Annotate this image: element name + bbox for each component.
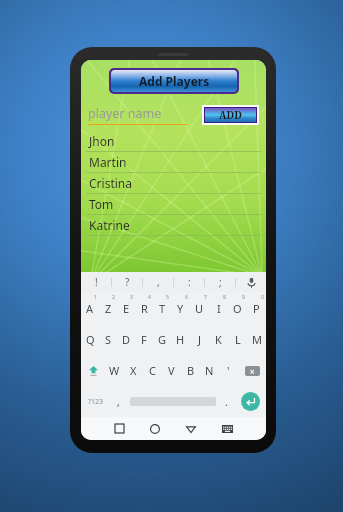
staticText: S	[105, 332, 112, 347]
button[interactable]: :	[174, 272, 204, 292]
button[interactable]: T	[153, 292, 171, 324]
staticText: I	[217, 301, 221, 316]
button[interactable]: P	[247, 292, 266, 324]
staticText: H	[176, 332, 185, 347]
button[interactable]: ADD	[205, 108, 256, 122]
button[interactable]: Martin	[81, 152, 266, 173]
button[interactable]: ?123	[81, 386, 110, 417]
button[interactable]: Katrine	[81, 215, 266, 236]
staticText: V	[168, 363, 175, 378]
staticText: ×	[250, 366, 255, 376]
staticText: '	[227, 363, 230, 378]
staticText: 7	[204, 294, 207, 301]
button[interactable]: Q	[81, 324, 99, 355]
button[interactable]: ?	[112, 272, 142, 292]
staticText: Y	[177, 301, 184, 316]
button[interactable]: R	[135, 292, 153, 324]
staticText: M	[252, 332, 262, 347]
button[interactable]: A	[81, 292, 99, 324]
button[interactable]: K	[209, 324, 228, 355]
button[interactable]: I	[209, 292, 228, 324]
button[interactable]: Cristina	[81, 173, 266, 194]
staticText: player name	[88, 105, 162, 122]
staticText: !	[95, 275, 98, 289]
button[interactable]: U	[190, 292, 209, 324]
button[interactable]: Recent apps	[101, 417, 137, 440]
staticText: Katrine	[89, 217, 130, 233]
staticText: ,	[157, 275, 160, 289]
button[interactable]: N	[200, 355, 219, 386]
button[interactable]: S	[99, 324, 117, 355]
button[interactable]: player name	[88, 105, 196, 125]
staticText: 5	[166, 294, 169, 301]
button[interactable]: Tom	[81, 194, 266, 215]
staticText: G	[158, 332, 167, 347]
button[interactable]: W	[105, 355, 124, 386]
button[interactable]: Home	[137, 417, 173, 440]
button[interactable]: ;	[205, 272, 235, 292]
staticText: 9	[242, 294, 245, 301]
button[interactable]: Backspace	[238, 355, 266, 386]
button[interactable]: ,	[143, 272, 173, 292]
staticText: 6	[185, 294, 188, 301]
staticText: Add Players	[139, 73, 210, 89]
staticText: L	[235, 332, 241, 347]
button[interactable]: Enter	[235, 386, 266, 417]
button[interactable]: Jhon	[81, 131, 266, 152]
staticText: 0	[261, 294, 264, 301]
button[interactable]: F	[135, 324, 153, 355]
staticText: K	[215, 332, 222, 347]
staticText: X	[130, 363, 137, 378]
staticText: 4	[148, 294, 151, 301]
staticText: Cristina	[89, 175, 132, 191]
staticText: R	[141, 301, 148, 316]
button[interactable]: ,	[110, 386, 127, 417]
staticText: Z	[105, 301, 112, 316]
staticText: :	[188, 275, 191, 289]
staticText: U	[195, 301, 204, 316]
staticText: 3	[130, 294, 133, 301]
button[interactable]: L	[228, 324, 247, 355]
staticText: ?123	[88, 397, 104, 407]
staticText: 2	[112, 294, 115, 301]
button[interactable]: G	[153, 324, 171, 355]
button[interactable]: '	[219, 355, 238, 386]
staticText: T	[159, 301, 166, 316]
button[interactable]: !	[81, 272, 111, 292]
staticText: D	[122, 332, 131, 347]
button[interactable]: H	[171, 324, 190, 355]
staticText: W	[109, 363, 120, 378]
staticText: ;	[219, 275, 222, 289]
button[interactable]: Voice input	[236, 272, 266, 292]
button[interactable]: V	[162, 355, 181, 386]
staticText: ,	[117, 395, 120, 409]
button[interactable]: O	[228, 292, 247, 324]
staticText: B	[187, 363, 195, 378]
button[interactable]: D	[117, 324, 135, 355]
button[interactable]: E	[117, 292, 135, 324]
staticText: Q	[86, 332, 95, 347]
button[interactable]: Hide keyboard	[209, 417, 245, 440]
staticText: Tom	[89, 196, 114, 212]
staticText: Jhon	[89, 133, 115, 149]
button[interactable]: X	[124, 355, 143, 386]
staticText: J	[198, 332, 202, 347]
staticText: 8	[223, 294, 226, 301]
button[interactable]: Add Players	[111, 70, 237, 92]
button[interactable]: J	[190, 324, 209, 355]
button[interactable]: B	[181, 355, 200, 386]
staticText: 1	[94, 294, 97, 301]
button[interactable]: Y	[171, 292, 190, 324]
button[interactable]: M	[247, 324, 266, 355]
button[interactable]: Back	[173, 417, 209, 440]
button[interactable]: Z	[99, 292, 117, 324]
staticText: F	[141, 332, 147, 347]
button[interactable]: Shift	[81, 355, 105, 386]
staticText: .	[225, 395, 228, 409]
staticText: A	[86, 301, 94, 316]
button[interactable]: C	[143, 355, 162, 386]
staticText: ?	[125, 275, 130, 289]
button[interactable]: .	[218, 386, 235, 417]
button[interactable]	[127, 386, 218, 417]
staticText: Martin	[89, 154, 127, 170]
